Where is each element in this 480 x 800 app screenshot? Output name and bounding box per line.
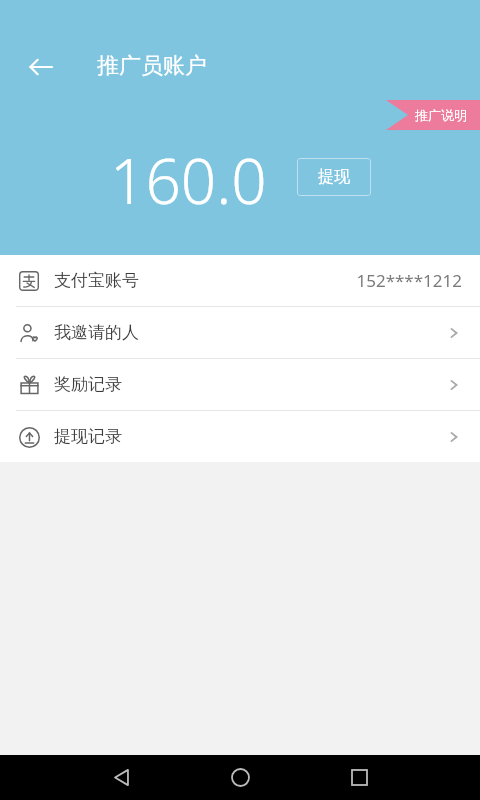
button[interactable]: 奖励记录 — [0, 359, 480, 410]
button[interactable]: Recent apps — [335, 755, 383, 800]
staticText: 我邀请的人 — [54, 322, 139, 343]
button[interactable]: Back — [97, 755, 145, 800]
button[interactable]: 支付宝账号 — [0, 255, 480, 306]
button[interactable]: 推广说明 — [386, 100, 480, 130]
staticText: 提现 — [318, 167, 350, 187]
staticText: 支付宝账号 — [54, 270, 139, 291]
button[interactable]: 提现记录 — [0, 411, 480, 462]
staticText: 推广员账户 — [97, 52, 207, 80]
staticText: 152****1212 — [356, 269, 462, 292]
staticText: 推广说明 — [415, 107, 467, 123]
button[interactable]: Back — [18, 44, 64, 90]
staticText: 奖励记录 — [54, 374, 122, 395]
staticText: 160.0 — [110, 138, 267, 222]
button[interactable]: 我邀请的人 — [0, 307, 480, 358]
staticText: 提现记录 — [54, 426, 122, 447]
button[interactable]: Home — [216, 755, 264, 800]
button[interactable]: 提现 — [297, 158, 371, 196]
